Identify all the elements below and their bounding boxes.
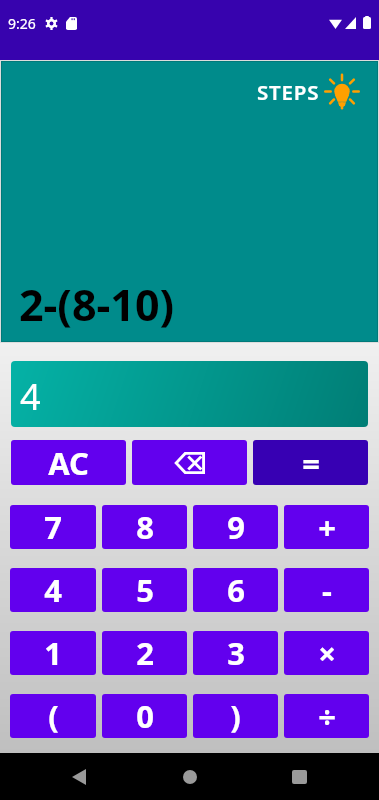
staticText: ÷ <box>318 695 336 737</box>
button[interactable]: Home <box>170 757 210 797</box>
button[interactable]: Back <box>59 757 99 797</box>
button[interactable]: Backspace <box>132 440 247 485</box>
button[interactable]: + <box>284 505 369 549</box>
staticText: 4 <box>44 569 62 611</box>
staticText: 7 <box>44 506 62 548</box>
staticText: 8 <box>136 506 154 548</box>
button[interactable]: 4 <box>10 568 96 612</box>
staticText: 9 <box>227 506 245 548</box>
staticText: AC <box>48 442 89 484</box>
staticText: = <box>302 442 320 484</box>
button[interactable]: 0 <box>102 694 187 738</box>
button[interactable]: 8 <box>102 505 187 549</box>
staticText: 2-(8-10) <box>19 275 175 334</box>
staticText: 0 <box>136 695 154 737</box>
staticText: STEPS <box>257 78 320 106</box>
button[interactable]: 9 <box>193 505 278 549</box>
staticText: 2 <box>136 632 154 674</box>
button[interactable]: STEPS <box>257 74 360 110</box>
button[interactable]: - <box>284 568 369 612</box>
button[interactable]: 1 <box>10 631 96 675</box>
staticText: 3 <box>227 632 245 674</box>
staticText: 4 <box>20 372 41 421</box>
button[interactable]: AC <box>11 440 126 485</box>
button[interactable]: 3 <box>193 631 278 675</box>
button[interactable]: ÷ <box>284 694 369 738</box>
staticText: 6 <box>227 569 245 611</box>
button[interactable]: ) <box>193 694 278 738</box>
staticText: 1 <box>44 632 62 674</box>
button[interactable]: Recents <box>279 757 319 797</box>
staticText: 9:26 <box>8 14 36 33</box>
button[interactable]: ( <box>10 694 96 738</box>
staticText: ) <box>230 695 241 737</box>
button[interactable]: × <box>284 631 369 675</box>
button[interactable]: 5 <box>102 568 187 612</box>
button[interactable]: 2 <box>102 631 187 675</box>
button[interactable]: = <box>253 440 368 485</box>
button[interactable]: 7 <box>10 505 96 549</box>
staticText: ( <box>48 695 59 737</box>
staticText: × <box>318 632 336 674</box>
staticText: - <box>322 569 332 611</box>
staticText: 5 <box>136 569 154 611</box>
button[interactable]: 6 <box>193 568 278 612</box>
staticText: + <box>318 506 336 548</box>
